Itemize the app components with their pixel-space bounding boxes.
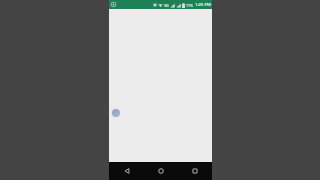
- staticText: 1:25 PM: [195, 2, 211, 8]
- button[interactable]: Home: [144, 162, 178, 180]
- staticText: 3G: [164, 3, 169, 8]
- other: Loading: [110, 107, 121, 118]
- button[interactable]: Back: [109, 162, 144, 180]
- staticText: 77%: [186, 3, 194, 8]
- button[interactable]: Recent apps: [178, 162, 212, 180]
